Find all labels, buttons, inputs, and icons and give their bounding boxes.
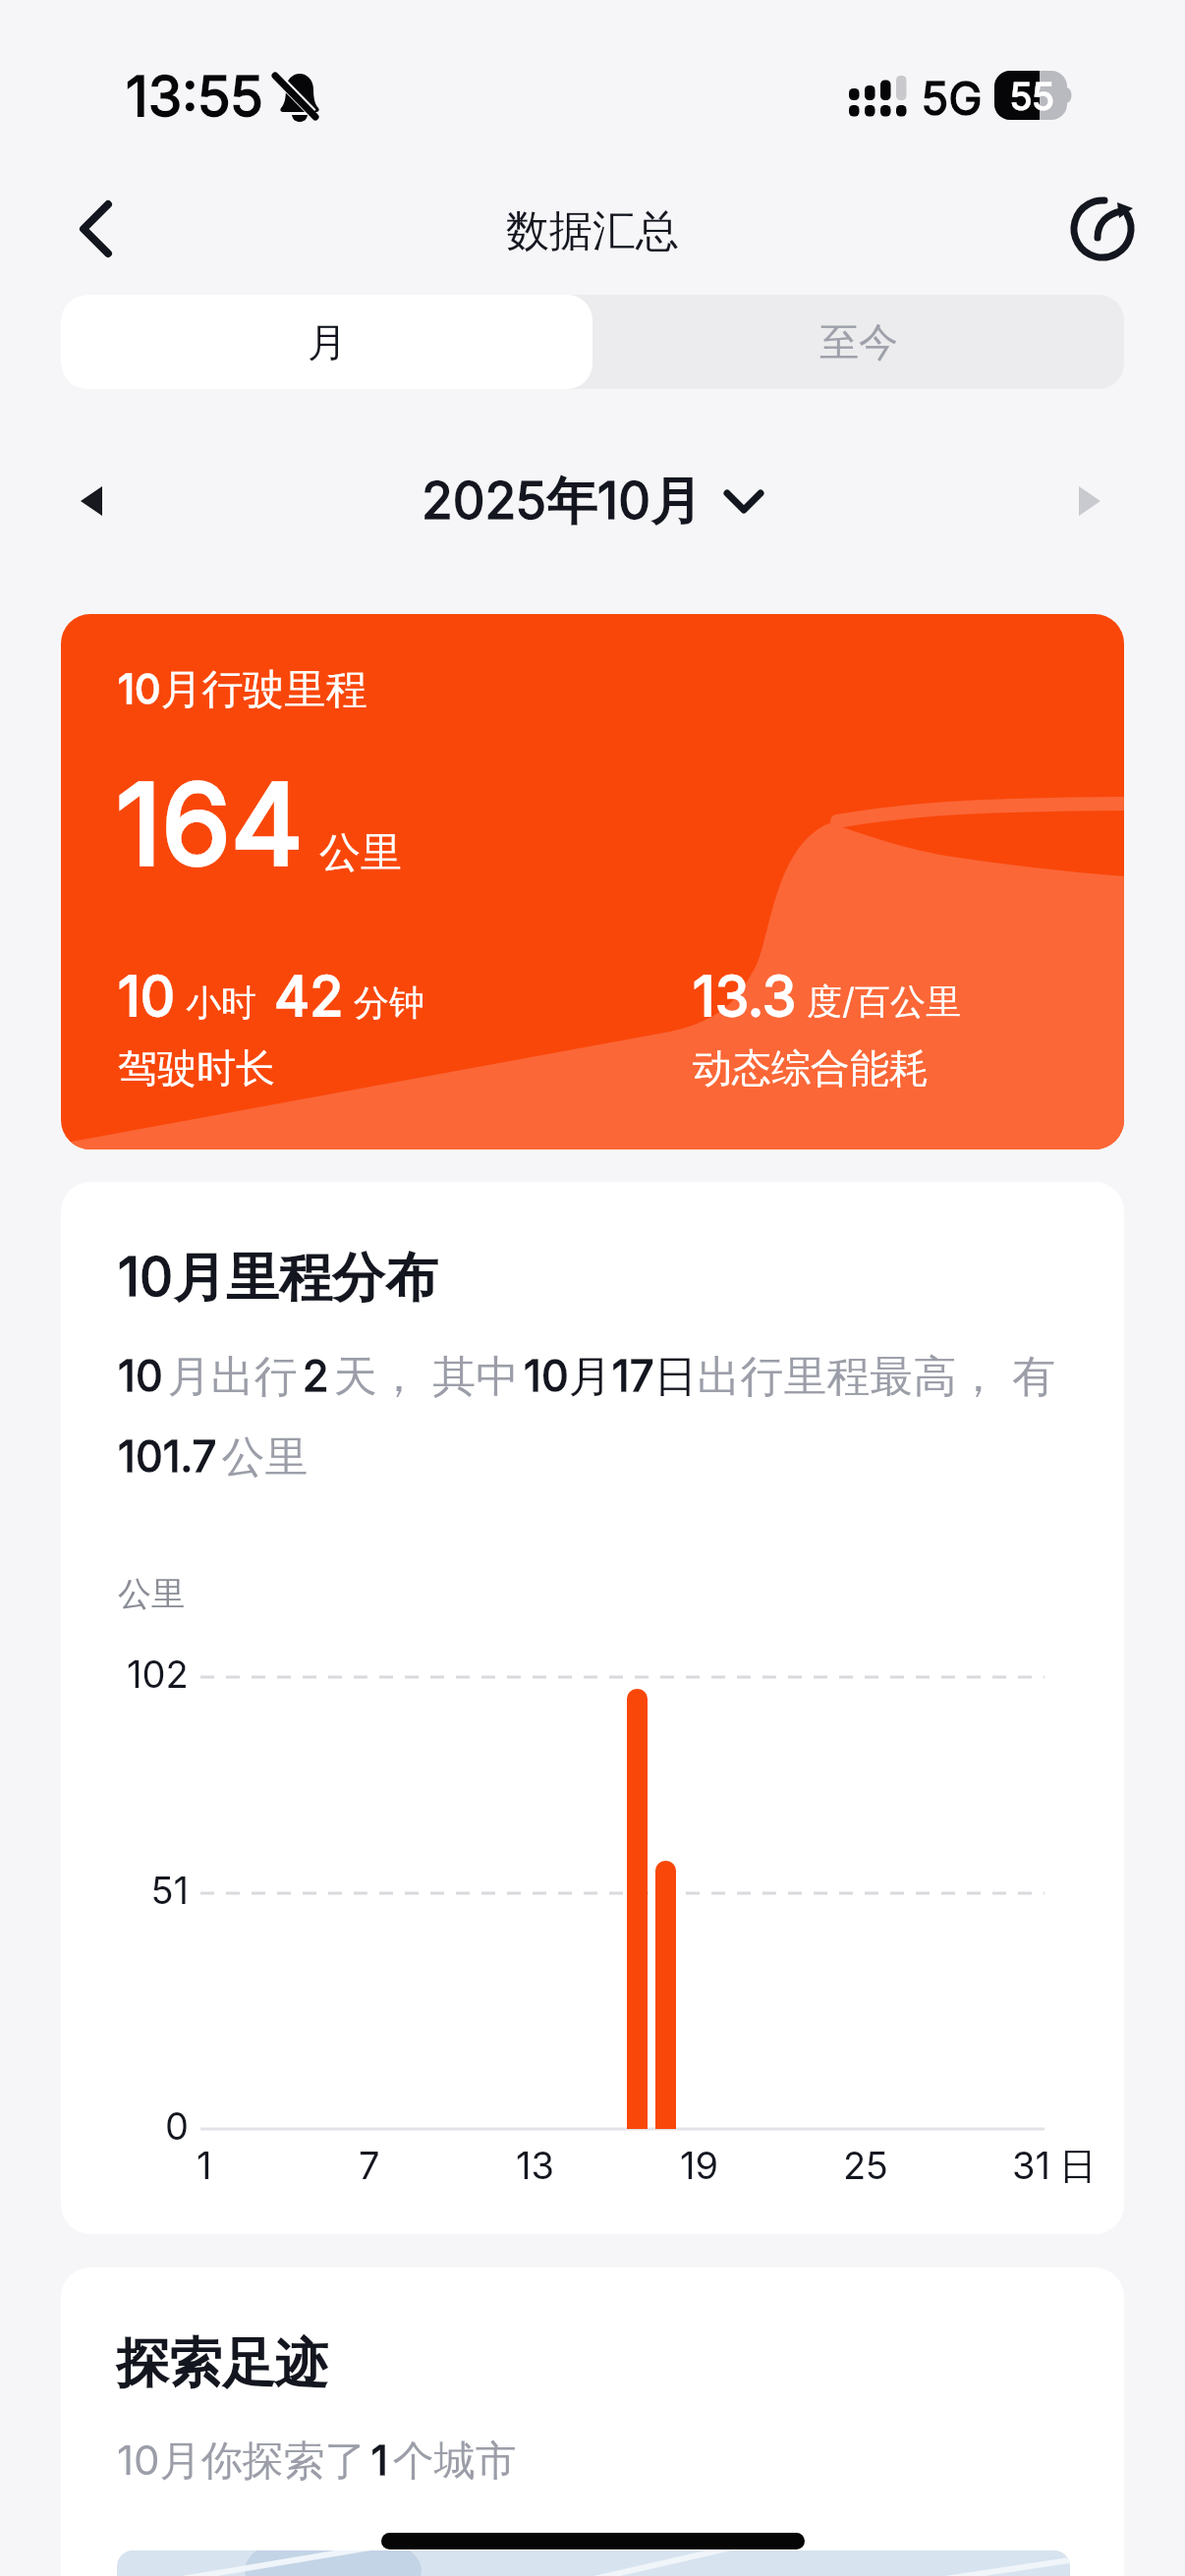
- staticText: 10月里程分布: [118, 1245, 439, 1312]
- staticText: 公里: [319, 827, 402, 879]
- staticText: 10: [118, 963, 176, 1030]
- staticText: 51: [151, 1868, 189, 1913]
- staticText: 10月行驶里程: [118, 663, 367, 715]
- staticText: 31: [1012, 2143, 1050, 2188]
- staticText: 0: [165, 2103, 189, 2149]
- staticText: 1: [197, 2143, 212, 2188]
- staticText: 10 月出行 2 天， 其中 10月17日出行里程最高， 有: [118, 1349, 1055, 1404]
- staticText: 小时: [186, 980, 256, 1025]
- button[interactable]: [61, 472, 120, 531]
- button[interactable]: [1065, 472, 1124, 531]
- staticText: 13: [516, 2143, 554, 2188]
- staticText: 分钟: [354, 980, 424, 1025]
- button[interactable]: 2025年10月: [422, 470, 763, 534]
- staticText: 5G: [922, 71, 983, 126]
- staticText: 探索足迹: [116, 2330, 328, 2397]
- staticText: 13:55: [126, 63, 263, 130]
- staticText: 动态综合能耗: [693, 1043, 929, 1092]
- staticText: 42: [274, 963, 344, 1030]
- staticText: 13.3: [693, 963, 797, 1030]
- staticText: 数据汇总: [506, 204, 679, 258]
- staticText: 驾驶时长: [118, 1043, 275, 1092]
- staticText: 度/百公里: [807, 980, 961, 1025]
- staticText: 164: [116, 756, 304, 892]
- staticText: 25: [843, 2143, 888, 2188]
- button[interactable]: 至今: [592, 295, 1124, 389]
- button[interactable]: [1067, 194, 1138, 264]
- staticText: 日: [1059, 2143, 1097, 2190]
- button[interactable]: [61, 192, 136, 266]
- staticText: 101.7 公里: [118, 1429, 309, 1484]
- staticText: 7: [359, 2143, 380, 2188]
- staticText: 公里: [118, 1573, 185, 1615]
- staticText: 19: [680, 2143, 719, 2188]
- button[interactable]: 月: [61, 295, 592, 389]
- staticText: 2025年10月: [422, 470, 703, 534]
- staticText: 55: [1010, 74, 1055, 119]
- staticText: 月: [308, 317, 347, 366]
- staticText: 102: [127, 1652, 189, 1697]
- staticText: 10月你探索了 1 个城市: [117, 2435, 517, 2487]
- staticText: 至今: [819, 317, 898, 366]
